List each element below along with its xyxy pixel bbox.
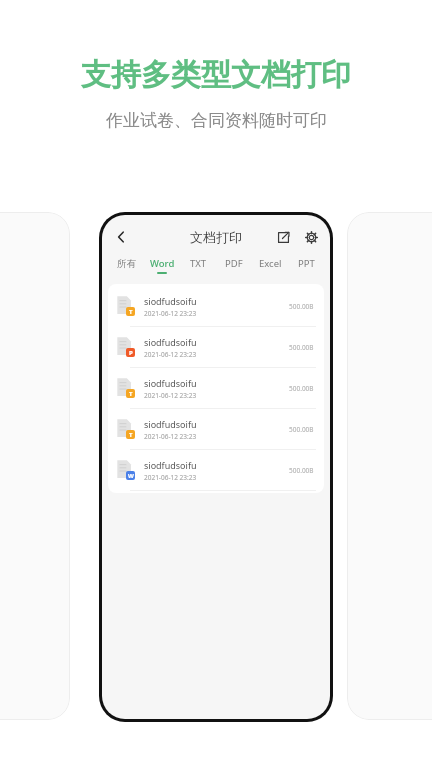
button[interactable]: Back	[110, 226, 132, 248]
staticText: 文档打印	[190, 229, 242, 245]
staticText: 2021-06-12 23:23	[144, 309, 197, 318]
staticText: W	[128, 472, 134, 480]
staticText: P	[129, 349, 133, 357]
staticText: siodfudsoifu	[144, 459, 197, 471]
staticText: 500.00B	[289, 384, 314, 393]
staticText: PDF	[225, 257, 243, 270]
staticText: 所有	[117, 258, 136, 270]
button[interactable]: Settings	[300, 226, 322, 248]
button[interactable]: Word	[144, 255, 180, 276]
staticText: TXT	[190, 257, 207, 270]
button[interactable]: PDF	[216, 255, 252, 276]
button[interactable]: W	[108, 450, 324, 490]
staticText: 作业试卷、合同资料随时可印	[106, 110, 327, 131]
staticText: PPT	[298, 257, 315, 270]
staticText: 500.00B	[289, 466, 314, 475]
button[interactable]: P	[108, 327, 324, 367]
staticText: 2021-06-12 23:23	[144, 473, 197, 482]
button[interactable]: TXT	[180, 255, 216, 276]
staticText: 2021-06-12 23:23	[144, 350, 197, 359]
button[interactable]: PPT	[288, 255, 324, 276]
staticText: 500.00B	[289, 425, 314, 434]
button[interactable]: T	[108, 409, 324, 449]
staticText: 2021-06-12 23:23	[144, 391, 197, 400]
staticText: 支持多类型文档打印	[81, 56, 351, 94]
staticText: Word	[150, 257, 175, 270]
staticText: 500.00B	[289, 302, 314, 311]
button[interactable]: Compose	[272, 226, 294, 248]
staticText: T	[129, 390, 133, 398]
button[interactable]: 所有	[108, 256, 144, 276]
staticText: siodfudsoifu	[144, 295, 197, 307]
button[interactable]: Excel	[252, 255, 288, 276]
staticText: T	[129, 308, 133, 316]
staticText: siodfudsoifu	[144, 377, 197, 389]
button[interactable]: T	[108, 286, 324, 326]
staticText: Excel	[259, 257, 282, 270]
staticText: siodfudsoifu	[144, 336, 197, 348]
staticText: 500.00B	[289, 343, 314, 352]
staticText: 2021-06-12 23:23	[144, 432, 197, 441]
button[interactable]: T	[108, 368, 324, 408]
staticText: T	[129, 431, 133, 439]
staticText: siodfudsoifu	[144, 418, 197, 430]
